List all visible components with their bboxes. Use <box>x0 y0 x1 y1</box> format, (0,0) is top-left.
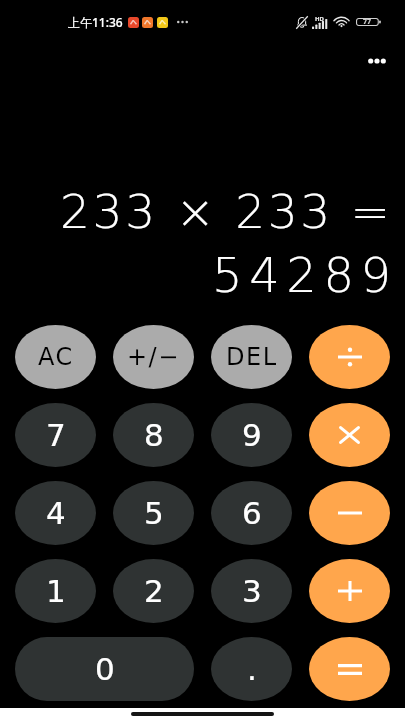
staticText: 2 <box>144 573 164 609</box>
button[interactable]: 0 <box>15 637 194 701</box>
button[interactable]: 5 <box>113 481 194 545</box>
button[interactable]: Multiply <box>309 403 390 467</box>
staticText: 6 <box>242 495 262 531</box>
staticText: DEL <box>226 343 278 371</box>
staticText: 4 <box>46 495 66 531</box>
button[interactable]: 9 <box>211 403 292 467</box>
staticText: 54289 <box>212 247 398 303</box>
staticText: AC <box>38 343 74 371</box>
button[interactable]: Divide <box>309 325 390 389</box>
button[interactable]: AC <box>15 325 96 389</box>
staticText: 233 × 233 = <box>60 184 393 239</box>
button[interactable]: 4 <box>15 481 96 545</box>
button[interactable]: 7 <box>15 403 96 467</box>
button[interactable]: 8 <box>113 403 194 467</box>
staticText: 上午11:36 <box>68 14 123 30</box>
button[interactable]: More options <box>353 37 401 85</box>
staticText: 77 <box>363 17 372 27</box>
button[interactable]: . <box>211 637 292 701</box>
button[interactable]: 2 <box>113 559 194 623</box>
staticText: 5 <box>144 495 164 531</box>
staticText: +/− <box>127 343 180 371</box>
staticText: 7 <box>46 417 66 453</box>
button[interactable]: +/− <box>113 325 194 389</box>
button[interactable]: 1 <box>15 559 96 623</box>
button[interactable]: 6 <box>211 481 292 545</box>
button[interactable]: Equals <box>309 637 390 701</box>
button[interactable]: Subtract <box>309 481 390 545</box>
staticText: 0 <box>95 651 115 687</box>
button[interactable]: 3 <box>211 559 292 623</box>
staticText: 8 <box>144 417 164 453</box>
staticText: 9 <box>242 417 262 453</box>
staticText: HD <box>315 15 324 23</box>
button[interactable]: DEL <box>211 325 292 389</box>
staticText: 1 <box>46 573 66 609</box>
staticText: . <box>247 651 257 687</box>
staticText: 3 <box>242 573 262 609</box>
button[interactable]: Add <box>309 559 390 623</box>
